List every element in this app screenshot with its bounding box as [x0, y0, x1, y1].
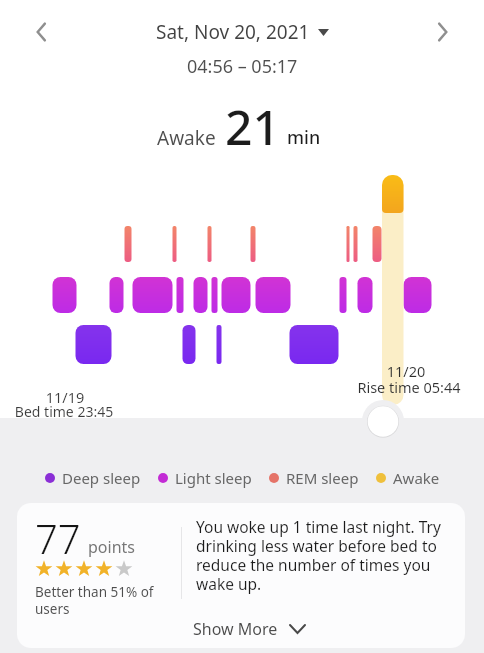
button[interactable]: Sat, Nov 20, 2021	[156, 19, 329, 45]
staticText: 77	[35, 511, 81, 565]
staticText: Bed time 23:45	[0, 402, 128, 421]
staticText: Better than 51% of users	[35, 583, 154, 618]
staticText: points	[88, 536, 135, 558]
staticText: 04:56 – 05:17	[187, 54, 298, 79]
staticText: Awake	[393, 468, 440, 488]
staticText: 11/20	[356, 361, 456, 381]
button[interactable]	[30, 20, 54, 44]
staticText: Light sleep	[175, 468, 252, 488]
staticText: min	[287, 125, 321, 150]
staticText: Awake	[157, 125, 216, 151]
staticText: Show More	[193, 618, 278, 640]
staticText: REM sleep	[286, 468, 359, 488]
staticText: Sat, Nov 20, 2021	[156, 19, 310, 45]
button[interactable]: Show More	[193, 618, 305, 640]
staticText: You woke up 1 time last night. Try drink…	[196, 516, 454, 594]
staticText: Rise time 05:44	[329, 377, 484, 397]
staticText: 21	[225, 94, 280, 159]
button[interactable]	[430, 20, 454, 44]
staticText: Deep sleep	[62, 468, 141, 488]
staticText: 11/19	[15, 387, 115, 407]
